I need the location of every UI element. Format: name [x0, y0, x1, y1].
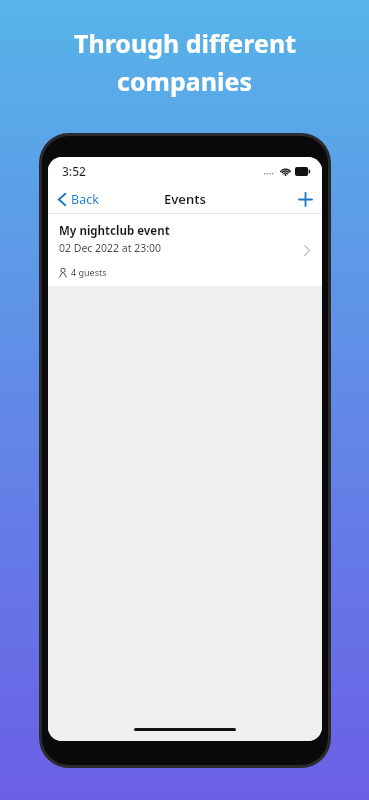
staticText: My nightclub event: [59, 223, 170, 239]
staticText: companies: [117, 64, 252, 98]
button[interactable]: My nightclub event: [48, 214, 322, 286]
staticText: 3:52: [62, 163, 86, 179]
staticText: Back: [71, 191, 99, 208]
staticText: Through different: [74, 26, 296, 60]
button[interactable]: Back: [48, 187, 107, 212]
staticText: 4 guests: [71, 266, 107, 278]
staticText: 02 Dec 2022 at 23:00: [59, 241, 162, 255]
staticText: Events: [164, 190, 206, 208]
button[interactable]: Add event: [289, 188, 322, 211]
